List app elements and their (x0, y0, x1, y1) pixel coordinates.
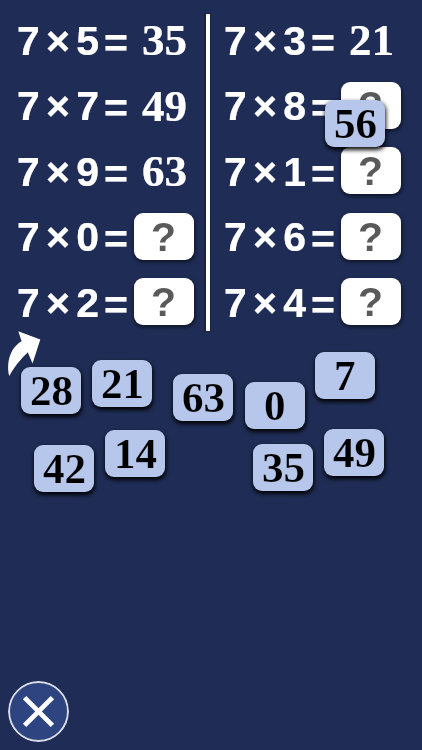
staticText: 49 (142, 81, 187, 128)
staticText: 35 (142, 15, 187, 62)
staticText: ? (151, 279, 177, 325)
staticText: 7×4 (224, 280, 313, 326)
staticText: ? (358, 214, 384, 260)
button[interactable]: 7 (309, 346, 387, 413)
staticText: 7×8 (224, 83, 313, 129)
staticText: = (104, 216, 135, 262)
button[interactable]: 63 (167, 368, 245, 435)
button[interactable]: Empty answer slot (128, 207, 204, 272)
button[interactable]: 56 (319, 94, 397, 161)
button[interactable]: Empty answer slot (335, 207, 411, 272)
staticText: 42 (43, 445, 86, 492)
staticText: 21 (101, 360, 144, 407)
button[interactable]: Empty answer slot (335, 141, 411, 206)
button[interactable]: 21 (86, 354, 164, 421)
button[interactable]: 28 (15, 361, 93, 428)
staticText: 35 (262, 444, 305, 491)
staticText: 63 (142, 146, 187, 193)
staticText: 7×3 (224, 18, 313, 64)
staticText: 49 (333, 429, 376, 476)
staticText: = (311, 282, 342, 328)
staticText: = (104, 85, 135, 131)
button[interactable]: Empty answer slot (335, 76, 411, 141)
staticText: 63 (182, 374, 225, 421)
staticText: ? (358, 148, 384, 194)
staticText: ? (358, 279, 384, 325)
staticText: 7×1 (224, 149, 313, 195)
staticText: 28 (30, 367, 73, 414)
staticText: 0 (264, 382, 286, 429)
staticText: = (311, 20, 342, 66)
staticText: 7×7 (17, 83, 106, 129)
staticText: 7 (334, 352, 356, 399)
staticText: = (104, 20, 135, 66)
staticText: 14 (114, 430, 157, 477)
staticText: = (311, 216, 342, 262)
staticText: = (311, 85, 342, 131)
button[interactable]: 0 (239, 376, 317, 443)
staticText: ? (358, 83, 384, 129)
staticText: ? (151, 214, 177, 260)
staticText: 7×2 (17, 280, 106, 326)
button[interactable]: 49 (318, 423, 396, 490)
button[interactable]: Empty answer slot (335, 272, 411, 337)
button[interactable]: 42 (28, 439, 106, 506)
staticText: = (104, 282, 135, 328)
button[interactable]: Close (8, 681, 69, 742)
button[interactable]: 14 (99, 424, 177, 491)
button[interactable]: Empty answer slot (128, 272, 204, 337)
staticText: = (311, 151, 342, 197)
button[interactable]: 35 (247, 438, 325, 505)
staticText: = (104, 151, 135, 197)
staticText: 21 (349, 15, 394, 62)
staticText: 7×0 (17, 214, 106, 260)
staticText: 7×5 (17, 18, 106, 64)
staticText: 56 (334, 100, 377, 147)
staticText: 7×6 (224, 214, 313, 260)
staticText: 7×9 (17, 149, 106, 195)
